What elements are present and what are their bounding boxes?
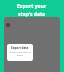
staticText: step's data (18, 11, 46, 18)
staticText: Export data (11, 46, 29, 50)
staticText: Export your (17, 3, 47, 10)
staticText: Choose file format to export (9, 51, 31, 57)
